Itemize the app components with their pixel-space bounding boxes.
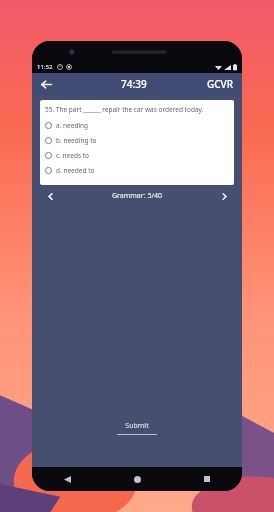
staticText: b. needing to bbox=[56, 136, 97, 145]
button[interactable]: Recents bbox=[172, 467, 242, 491]
staticText: 55. The part ______ repair the car was o… bbox=[45, 105, 204, 114]
staticText: c. needs to bbox=[56, 151, 89, 160]
button[interactable]: Home bbox=[102, 467, 172, 491]
button[interactable]: c. needs to bbox=[45, 148, 229, 163]
staticText: a. needing bbox=[56, 121, 89, 130]
button[interactable]: b. needing to bbox=[45, 133, 229, 148]
button[interactable]: a. needing bbox=[45, 118, 229, 133]
staticText: d. needed to bbox=[56, 166, 95, 175]
button[interactable]: Previous bbox=[40, 186, 60, 206]
staticText: Submit bbox=[125, 421, 149, 431]
button[interactable]: d. needed to bbox=[45, 163, 229, 178]
button[interactable]: Back bbox=[32, 467, 102, 491]
staticText: GCVR bbox=[207, 77, 234, 91]
button[interactable]: GCVR bbox=[207, 73, 242, 95]
staticText: 11:52 bbox=[37, 63, 53, 71]
staticText: Grammar: 5/40 bbox=[112, 191, 162, 201]
button[interactable]: Back bbox=[32, 73, 60, 95]
staticText: 74:39 bbox=[121, 77, 147, 91]
button[interactable]: Submit bbox=[103, 417, 171, 439]
button[interactable]: Next bbox=[214, 186, 234, 206]
